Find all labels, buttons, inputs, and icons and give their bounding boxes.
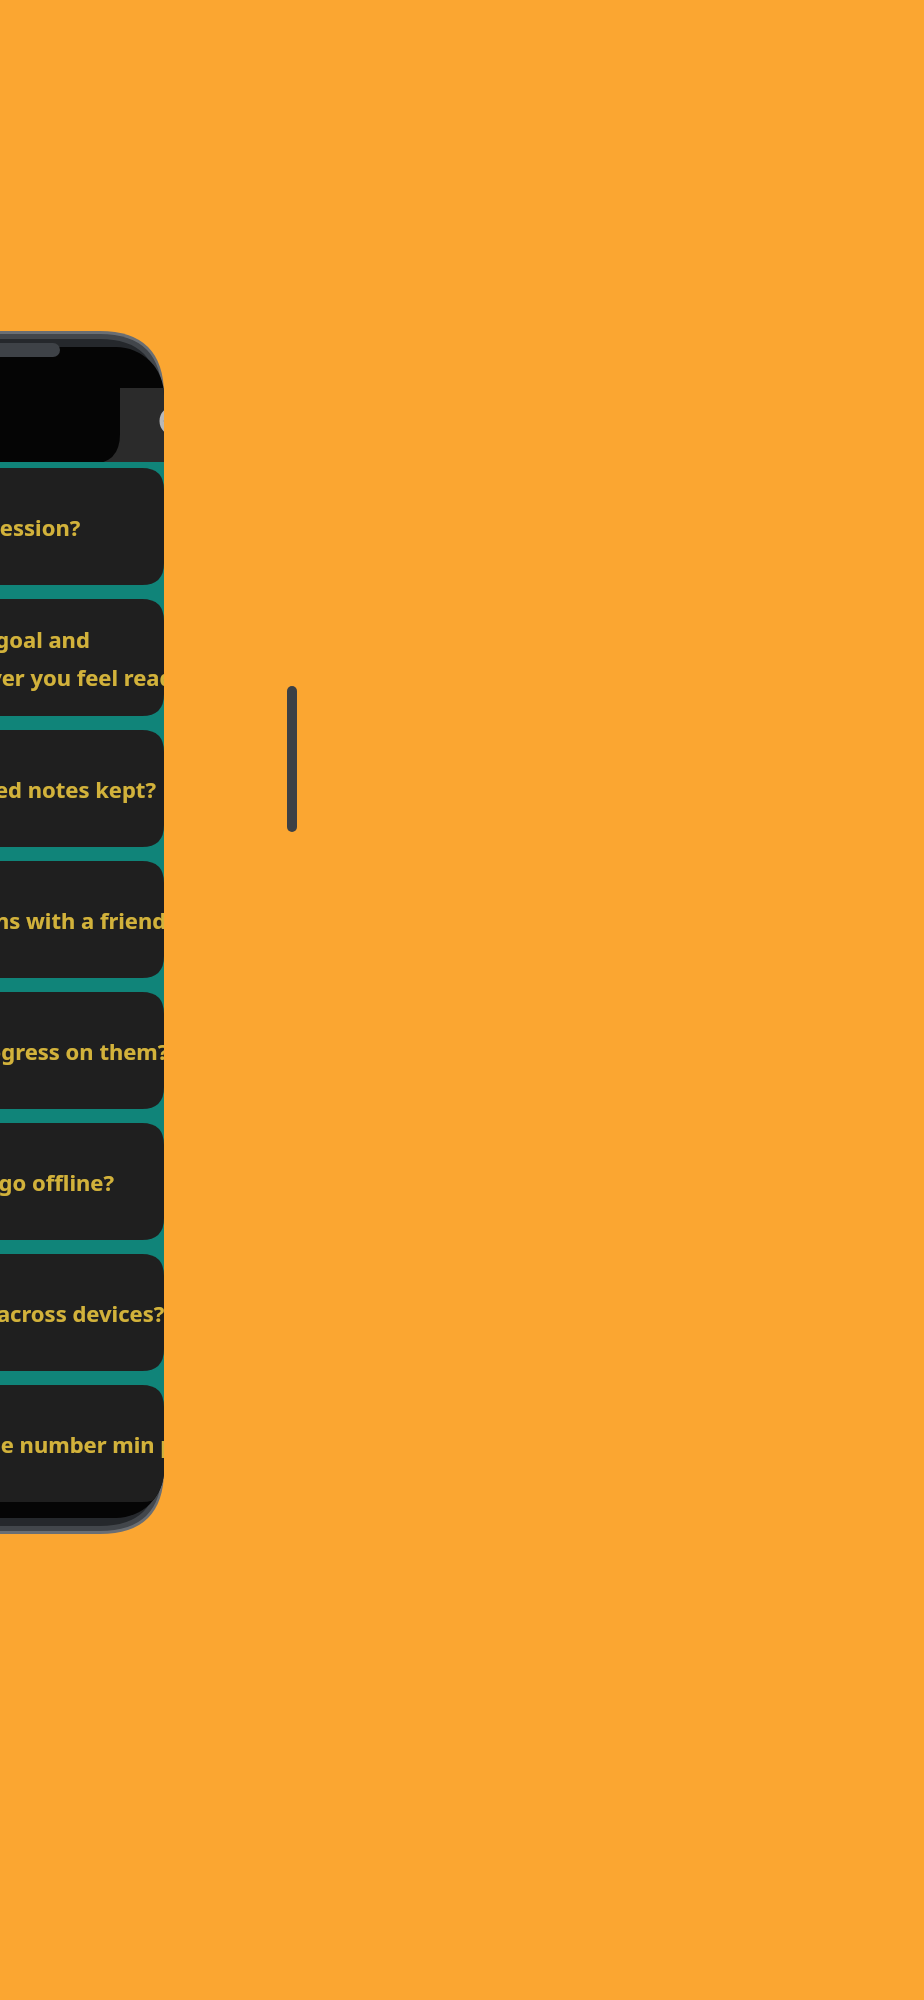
staticText: How do I reset progress on them? (0, 1036, 164, 1066)
staticText: Will my data sync across devices? (0, 1298, 164, 1328)
button[interactable]: Pick a topic, set a goal and (0, 599, 164, 716)
staticText: then start whenever you feel ready. (0, 662, 164, 692)
button[interactable]: Can I share sessions with a friend? (0, 861, 164, 978)
button[interactable]: How do I reset progress on them? (0, 992, 164, 1109)
button[interactable]: Where are my saved notes kept? (0, 730, 164, 847)
button[interactable]: What happens if I go offline? (0, 1123, 164, 1240)
staticText: Can I share sessions with a friend? (0, 905, 164, 935)
staticText: What happens if I go offline? (0, 1167, 114, 1197)
button[interactable]: Will my data sync across devices? (0, 1254, 164, 1371)
staticText: You can change the number min pe (0, 1429, 164, 1459)
button[interactable]: You can change the number min pe (0, 1385, 164, 1502)
staticText: Pick a topic, set a goal and (0, 624, 90, 654)
staticText: How do I begin a session? (0, 512, 81, 542)
button[interactable]: Search (135, 389, 164, 461)
staticText: Where are my saved notes kept? (0, 774, 156, 804)
button[interactable]: How do I begin a session? (0, 468, 164, 585)
